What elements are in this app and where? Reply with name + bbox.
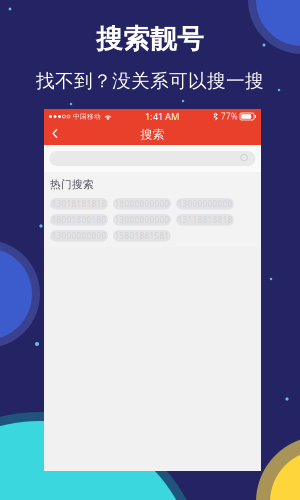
staticText: 15801881581 xyxy=(114,230,169,241)
staticText: 13000000000 xyxy=(114,214,169,225)
button[interactable]: Back xyxy=(44,124,66,145)
staticText: 中国移动 xyxy=(73,112,101,121)
staticText: 13000000000 xyxy=(177,198,232,209)
staticText: 18000000000 xyxy=(114,198,169,209)
staticText: 13118818818 xyxy=(177,214,232,225)
button[interactable]: 13000000000 xyxy=(113,214,171,226)
staticText: 搜索 xyxy=(140,127,164,142)
staticText: 1:41 AM xyxy=(145,110,180,123)
staticText: 18001800180 xyxy=(51,214,106,225)
button[interactable]: 18000000000 xyxy=(113,198,171,210)
staticText: 13000000000 xyxy=(51,230,106,241)
button[interactable]: 13000000000 xyxy=(176,198,234,210)
button[interactable]: 13018181818 xyxy=(50,198,108,210)
button[interactable]: 13118818818 xyxy=(176,214,234,226)
button[interactable]: 15801881581 xyxy=(113,230,171,242)
staticText: 77% xyxy=(221,111,238,122)
staticText: 搜索靓号 xyxy=(96,23,204,55)
button[interactable]: 18001800180 xyxy=(50,214,108,226)
staticText: 13018181818 xyxy=(51,198,106,209)
button[interactable]: 13000000000 xyxy=(50,230,108,242)
staticText: 热门搜索 xyxy=(50,178,94,191)
staticText: 找不到？没关系可以搜一搜 xyxy=(36,69,264,92)
